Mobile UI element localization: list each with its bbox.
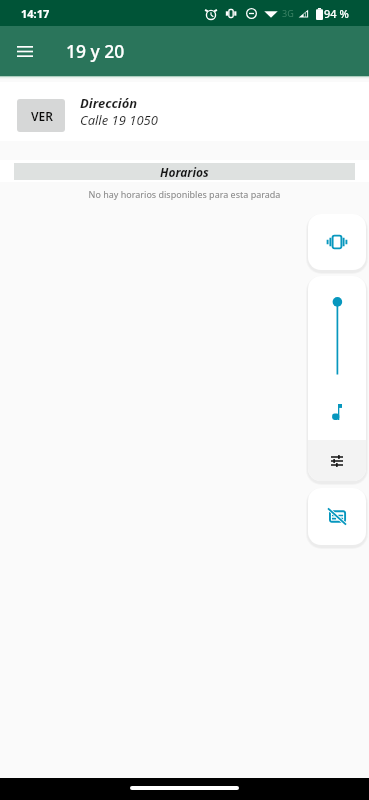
staticText: Calle 19 1050 <box>80 111 158 129</box>
staticText: 94 % <box>324 6 349 21</box>
button[interactable]: Open navigation drawer <box>5 31 45 71</box>
button[interactable]: Horarios <box>14 163 355 180</box>
staticText: No hay horarios disponibles para esta pa… <box>0 188 369 200</box>
staticText: 14:17 <box>21 6 50 21</box>
staticText: Dirección <box>80 94 138 112</box>
staticText: 3G <box>282 7 294 19</box>
staticText: 19 y 20 <box>66 39 125 63</box>
button[interactable]: VER <box>17 99 65 132</box>
button[interactable]: Ringer mode vibrate <box>308 214 366 270</box>
button[interactable]: Volume settings <box>308 440 366 481</box>
button[interactable]: Media volume <box>308 276 366 440</box>
staticText: Horarios <box>160 164 209 180</box>
button[interactable]: VER <box>0 82 369 141</box>
button[interactable]: Captions off <box>308 488 366 545</box>
staticText: VER <box>31 108 53 124</box>
